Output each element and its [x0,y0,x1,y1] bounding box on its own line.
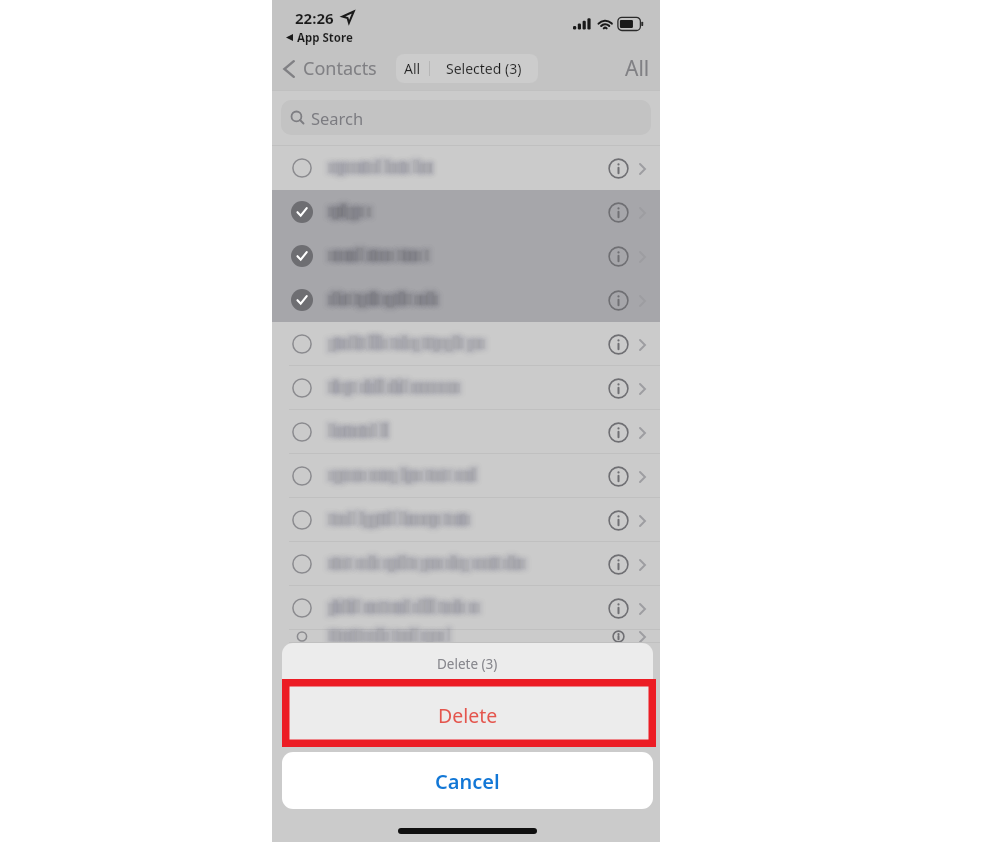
button[interactable]: Search [281,100,651,135]
button[interactable]: Contact info [605,331,631,357]
button[interactable]: Contact info [605,243,631,269]
button[interactable]: Contact info [272,322,660,366]
button[interactable]: Contacts [272,51,385,86]
button[interactable]: Delete [282,681,653,745]
staticText: Delete (3) [437,655,498,673]
button[interactable]: Contact info [605,507,631,533]
button[interactable]: Contact info [605,199,631,225]
button[interactable]: Contact info [272,190,660,234]
button[interactable]: Contact info [272,630,660,643]
button[interactable]: All [396,54,429,83]
other: Open contact [636,206,649,219]
button[interactable]: Contact info [272,146,660,190]
staticText: Selected (3) [446,59,522,78]
other: Open contact [636,602,649,615]
other: Open contact [636,294,649,307]
button[interactable]: Contact info [272,278,660,322]
button[interactable]: Contact info [605,375,631,401]
button[interactable]: Contact info [272,542,660,586]
button[interactable]: Contact info [605,419,631,445]
other: Open contact [636,426,649,439]
button[interactable]: Contact info [605,155,631,181]
button[interactable]: Selected (3) [430,54,538,83]
button[interactable]: Contact info [272,454,660,498]
staticText: All [404,59,421,78]
other: Open contact [636,558,649,571]
staticText: Contacts [303,56,377,81]
staticText: Delete [438,702,498,729]
other: Open contact [636,162,649,175]
button[interactable]: All [611,47,660,90]
button[interactable]: Contact info [605,463,631,489]
other: Open contact [636,514,649,527]
other: Open contact [636,382,649,395]
button[interactable]: Contact info [605,551,631,577]
button[interactable]: Contact info [272,366,660,410]
staticText: Search [311,107,364,129]
staticText: 22:26 [295,8,334,28]
button[interactable]: Contact info [605,630,631,643]
staticText: App Store [297,30,353,46]
button[interactable]: Contact info [605,595,631,621]
button[interactable]: Contact info [272,410,660,454]
other: Open contact [636,250,649,263]
staticText: All [625,54,650,83]
button[interactable]: Cancel [282,752,653,809]
other: Open contact [636,630,649,643]
button[interactable]: Contact info [605,287,631,313]
button[interactable]: Contact info [272,234,660,278]
button[interactable]: Contact info [272,498,660,542]
other: Open contact [636,470,649,483]
other: Open contact [636,338,649,351]
staticText: Cancel [435,768,500,795]
button[interactable]: Contact info [272,586,660,630]
